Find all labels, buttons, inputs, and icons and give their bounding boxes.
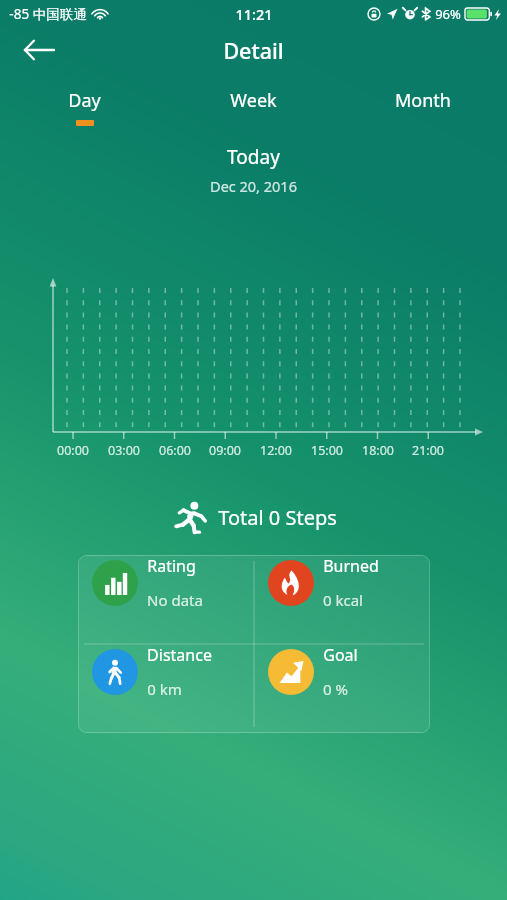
staticText: 96% xyxy=(435,5,461,23)
staticText: -85 中国联通 xyxy=(9,5,87,23)
staticText: 09:00 xyxy=(209,442,241,459)
staticText: 06:00 xyxy=(159,442,191,459)
button[interactable]: Rating xyxy=(78,555,254,610)
staticText: Month xyxy=(395,88,451,113)
staticText: Day xyxy=(68,88,101,113)
staticText: No data xyxy=(147,590,203,610)
staticText: 0 km xyxy=(147,679,182,699)
button[interactable]: Month xyxy=(338,88,507,130)
staticText: 0 % xyxy=(323,679,348,699)
button[interactable]: Week xyxy=(169,88,338,130)
staticText: Burned xyxy=(323,555,379,577)
staticText: Week xyxy=(230,88,277,113)
staticText: 15:00 xyxy=(311,442,343,459)
staticText: Detail xyxy=(223,36,284,65)
staticText: Dec 20, 2016 xyxy=(210,176,297,196)
staticText: 18:00 xyxy=(362,442,394,459)
staticText: 21:00 xyxy=(412,442,444,459)
staticText: Distance xyxy=(147,644,212,666)
staticText: Today xyxy=(227,144,280,170)
staticText: 00:00 xyxy=(57,442,89,459)
staticText: 0 kcal xyxy=(323,590,363,610)
staticText: Goal xyxy=(323,644,358,666)
staticText: Total 0 Steps xyxy=(218,504,337,531)
staticText: 11:21 xyxy=(235,4,273,24)
button[interactable]: Back xyxy=(14,29,64,71)
button[interactable]: Day xyxy=(0,88,169,130)
staticText: Rating xyxy=(147,555,196,577)
staticText: 12:00 xyxy=(260,442,292,459)
button[interactable]: Goal xyxy=(254,644,430,699)
button[interactable]: Burned xyxy=(254,555,430,610)
button[interactable]: Distance xyxy=(78,644,254,699)
staticText: 03:00 xyxy=(108,442,140,459)
